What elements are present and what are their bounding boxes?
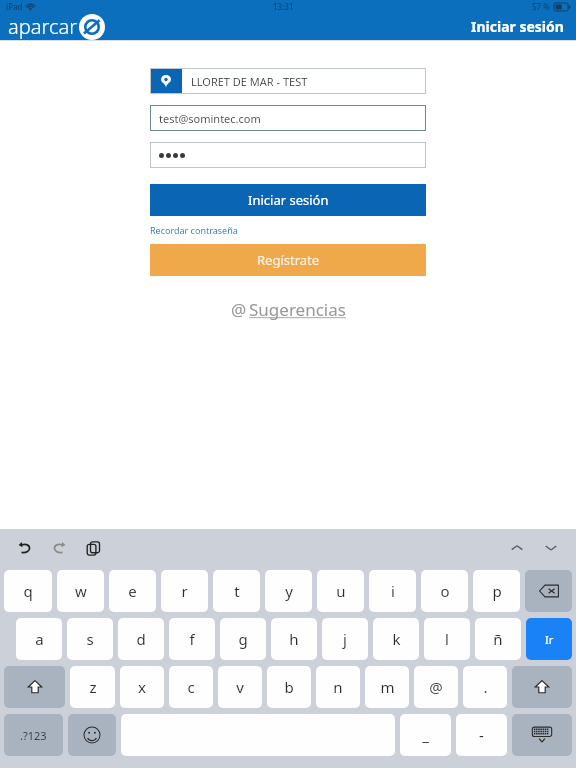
staticText: v [236,677,244,697]
button[interactable]: Iniciar sesión [471,17,564,36]
staticText: n [333,677,343,697]
staticText: g [238,629,248,649]
button[interactable]: Emoji [68,714,116,756]
staticText: u [336,581,346,601]
staticText: Ir [545,632,554,647]
staticText: Regístrate [257,251,320,269]
staticText: c [187,677,195,697]
staticText: - [479,725,484,745]
button[interactable]: u [317,570,364,612]
button[interactable]: r [161,570,208,612]
button[interactable]: k [373,618,419,660]
staticText: i [391,581,395,601]
button[interactable]: y [265,570,312,612]
button[interactable]: test@somintec.com [150,105,426,131]
staticText: y [285,581,293,601]
button[interactable]: aparcar logo [8,13,105,40]
button[interactable]: f [169,618,215,660]
staticText: iPad [6,1,23,12]
staticText: x [138,677,146,697]
staticText: a [35,629,44,649]
button[interactable]: Redo [46,535,72,561]
button[interactable]: a [16,618,62,660]
staticText: _ [422,725,429,745]
button[interactable]: - [456,714,507,756]
button[interactable]: m [365,666,409,708]
staticText: s [86,629,94,649]
button[interactable]: p [473,570,520,612]
staticText: .?123 [20,728,47,743]
staticText: k [392,629,401,649]
button[interactable]: i [369,570,416,612]
staticText: m [380,677,395,697]
button[interactable]: Shift [512,666,572,708]
button[interactable]: j [322,618,368,660]
staticText: test@somintec.com [159,111,261,126]
staticText: . [483,677,488,697]
button[interactable]: c [169,666,213,708]
staticText: aparcar [8,13,78,40]
staticText: z [89,677,97,697]
button[interactable]: s [67,618,113,660]
button[interactable]: Hide keyboard [512,714,572,756]
button[interactable]: l [424,618,470,660]
button[interactable]: Regístrate [150,244,426,276]
button[interactable]: Recordar contraseña [150,224,238,236]
button[interactable]: Ir [526,618,572,660]
button[interactable]: Previous field [504,535,530,561]
staticText: Sugerencias [249,298,346,321]
button[interactable]: @ [414,666,458,708]
button[interactable]: q [4,570,52,612]
staticText: 57 % [532,1,551,12]
button[interactable]: g [220,618,266,660]
button[interactable]: t [213,570,260,612]
staticText: l [445,629,449,649]
staticText: f [189,629,195,649]
button[interactable]: .?123 [4,714,63,756]
staticText: Iniciar sesión [248,191,329,209]
button[interactable]: b [267,666,311,708]
staticText: w [75,581,87,601]
staticText: h [289,629,299,649]
button[interactable]: @ [231,298,346,321]
button[interactable]: Shift [4,666,65,708]
button[interactable]: Undo [12,535,38,561]
button[interactable]: Next field [538,535,564,561]
button[interactable]: ñ [475,618,521,660]
staticText: b [284,677,294,697]
staticText: r [181,581,188,601]
staticText: p [492,581,502,601]
button[interactable]: e [109,570,156,612]
button[interactable]: Backspace [525,570,572,612]
staticText: o [440,581,450,601]
button[interactable]: n [316,666,360,708]
button[interactable]: Iniciar sesión [150,184,426,216]
staticText: ñ [493,629,503,649]
button[interactable]: . [463,666,507,708]
staticText: t [234,581,240,601]
button[interactable]: h [271,618,317,660]
button[interactable] [150,142,426,168]
staticText: j [343,629,347,649]
staticText: @ [231,298,247,321]
button[interactable]: w [57,570,104,612]
button[interactable]: d [118,618,164,660]
staticText: Recordar contraseña [150,224,238,236]
staticText: q [23,581,33,601]
staticText: @ [429,677,443,697]
staticText: d [136,629,146,649]
staticText: LLORET DE MAR - TEST [191,74,308,89]
staticText: Iniciar sesión [471,17,564,36]
button[interactable]: z [70,666,115,708]
button[interactable]: Paste [80,535,106,561]
button[interactable]: o [421,570,468,612]
staticText: 13:31 [273,1,294,12]
button[interactable]: _ [400,714,451,756]
staticText: e [128,581,137,601]
button[interactable]: x [120,666,164,708]
button[interactable]: v [218,666,262,708]
button[interactable]: LLORET DE MAR - TEST [150,68,426,94]
